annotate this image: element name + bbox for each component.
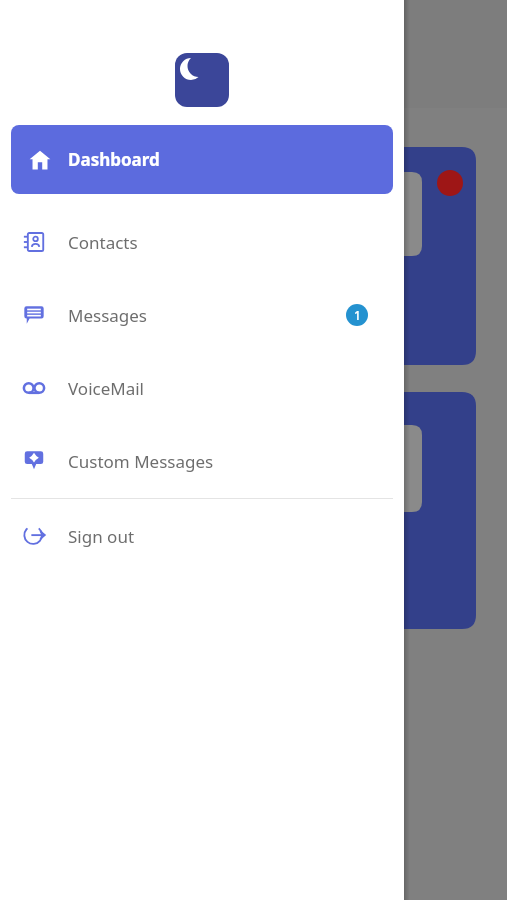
button[interactable]: Dashboard bbox=[11, 125, 393, 194]
staticText: VoiceMail bbox=[68, 377, 145, 400]
button[interactable]: Contacts bbox=[0, 216, 404, 268]
button[interactable]: App logo bbox=[175, 53, 229, 107]
button[interactable]: Messages bbox=[0, 289, 404, 341]
staticText: Contacts bbox=[68, 231, 138, 254]
button[interactable]: Sign out bbox=[0, 510, 404, 562]
staticText: Messages bbox=[68, 304, 148, 327]
button[interactable]: VoiceMail bbox=[0, 362, 404, 414]
staticText: Dashboard bbox=[68, 148, 160, 171]
button[interactable]: Custom Messages bbox=[0, 435, 404, 487]
staticText: Sign out bbox=[68, 525, 135, 548]
staticText: Custom Messages bbox=[68, 450, 214, 473]
staticText: 1 bbox=[354, 307, 361, 323]
